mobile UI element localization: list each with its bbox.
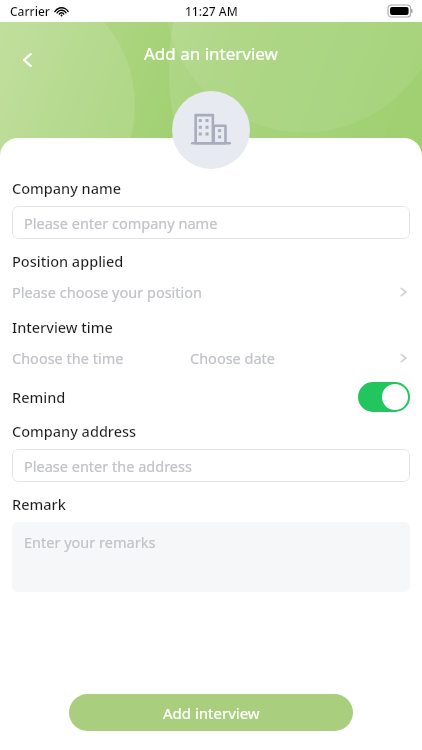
- staticText: Add interview: [163, 703, 260, 723]
- staticText: Company address: [12, 421, 137, 441]
- button[interactable]: Back: [6, 38, 50, 82]
- staticText: Position applied: [12, 251, 124, 271]
- button[interactable]: Remind: [0, 377, 422, 417]
- button[interactable]: Please choose your position: [0, 275, 422, 309]
- staticText: Choose the time: [12, 348, 124, 368]
- staticText: Choose date: [190, 348, 276, 368]
- button[interactable]: Remind toggle: [358, 382, 410, 412]
- button[interactable]: Enter your remarks: [12, 522, 410, 592]
- button[interactable]: Company logo: [172, 91, 250, 169]
- staticText: Add an interview: [144, 42, 278, 65]
- staticText: Carrier: [10, 3, 50, 19]
- staticText: Remind: [12, 387, 66, 407]
- staticText: Please choose your position: [12, 282, 203, 302]
- button[interactable]: Please enter company name: [12, 206, 410, 239]
- button[interactable]: Choose the time: [0, 341, 422, 375]
- button[interactable]: Please enter the address: [12, 449, 410, 482]
- staticText: Remark: [12, 494, 66, 514]
- staticText: 11:27 AM: [185, 3, 238, 19]
- staticText: Please enter company name: [24, 213, 218, 233]
- staticText: Please enter the address: [24, 456, 192, 476]
- button[interactable]: Add interview: [69, 694, 353, 731]
- staticText: Interview time: [12, 317, 113, 337]
- staticText: Enter your remarks: [24, 532, 156, 552]
- staticText: Company name: [12, 178, 122, 198]
